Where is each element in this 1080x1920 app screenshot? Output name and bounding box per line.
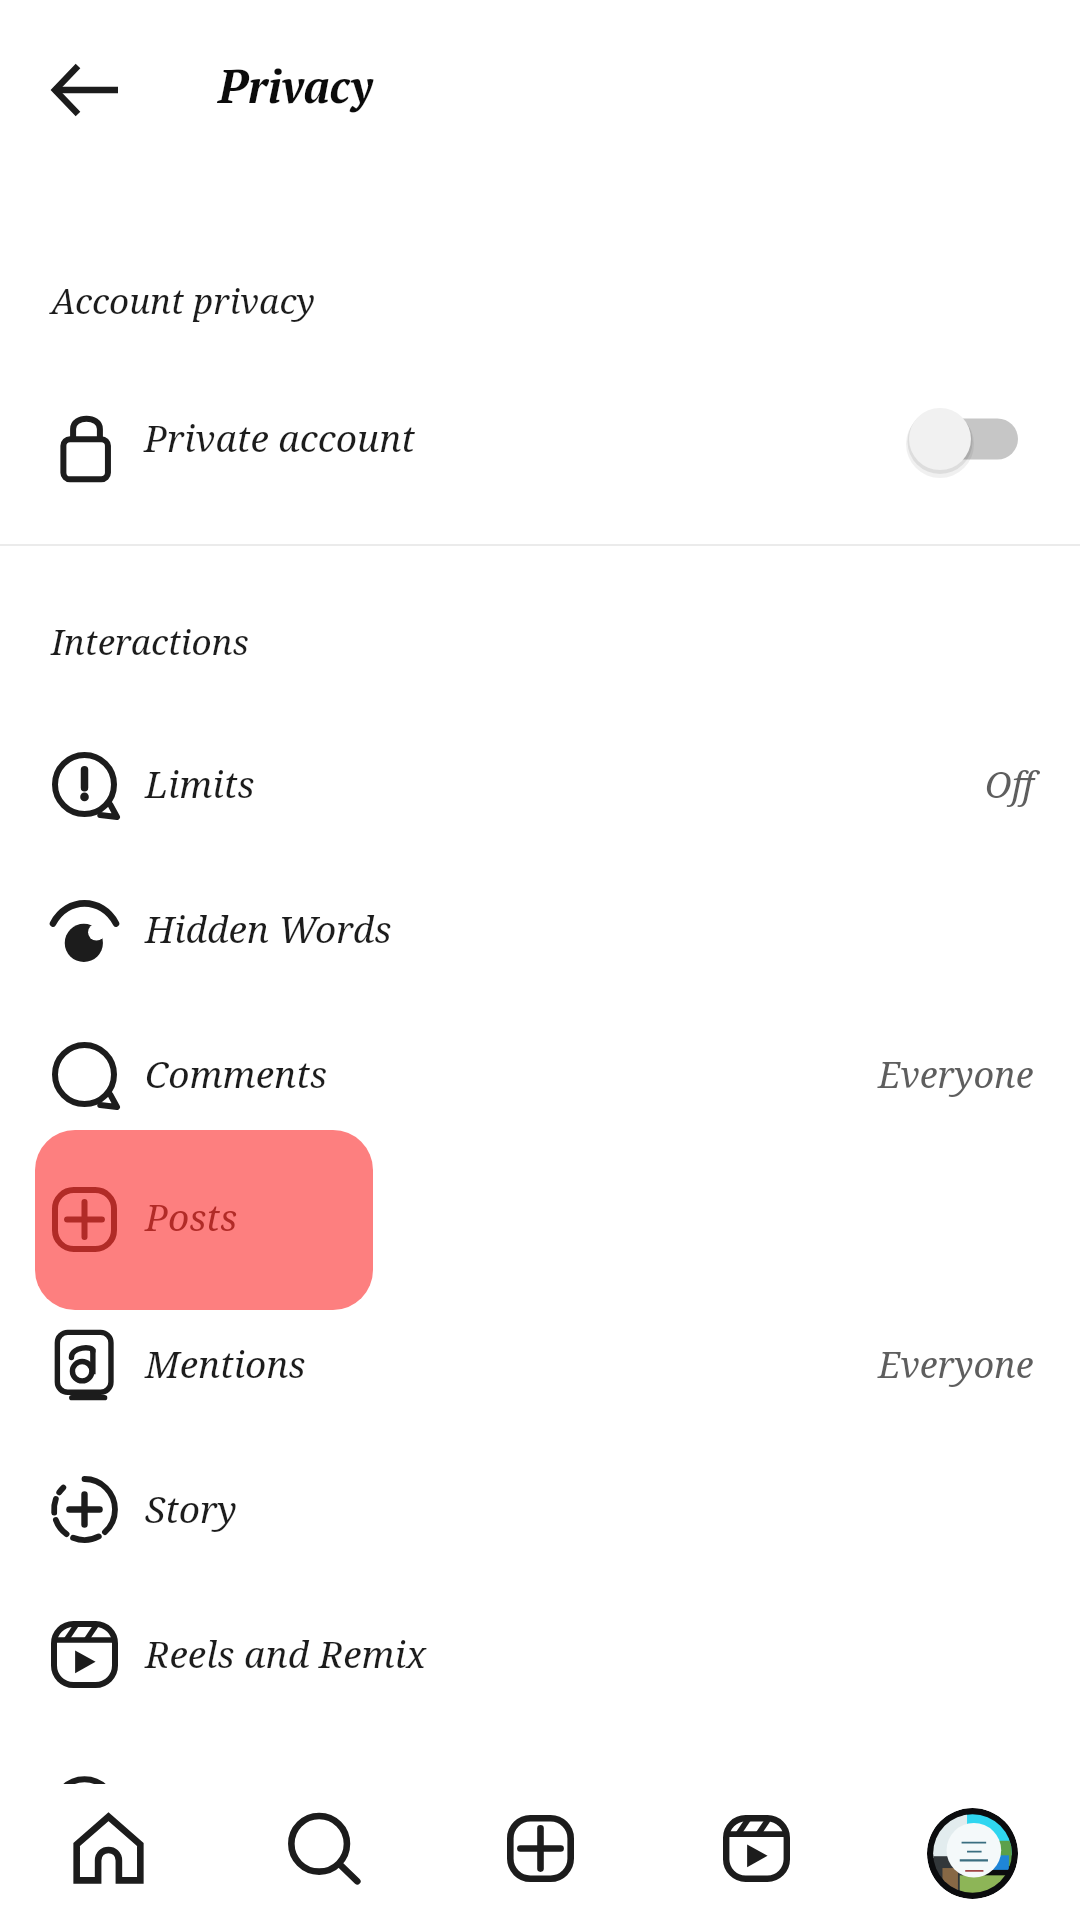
button[interactable]: Posts bbox=[0, 1148, 1080, 1292]
button[interactable]: Story bbox=[0, 1438, 1080, 1582]
button[interactable]: Hidden Words bbox=[0, 858, 1080, 1002]
staticText: Everyone bbox=[878, 1050, 1034, 1099]
staticText: Account privacy bbox=[51, 277, 315, 325]
button[interactable]: Create bbox=[492, 1806, 588, 1902]
staticText: Private account bbox=[144, 412, 415, 462]
button[interactable]: Reels bbox=[708, 1806, 804, 1902]
staticText: Everyone bbox=[878, 1340, 1034, 1389]
staticText: Posts bbox=[145, 1193, 238, 1243]
staticText: Off bbox=[985, 760, 1034, 809]
staticText: Privacy bbox=[218, 55, 373, 116]
staticText: Mentions bbox=[145, 1338, 306, 1388]
button[interactable]: Profile bbox=[927, 1808, 1018, 1899]
button[interactable]: Back bbox=[52, 64, 118, 116]
staticText: Hidden Words bbox=[145, 903, 392, 953]
staticText: Comments bbox=[145, 1048, 327, 1098]
staticText: Interactions bbox=[51, 618, 249, 666]
button[interactable]: Limits bbox=[0, 713, 1080, 857]
button[interactable]: Comments bbox=[0, 1003, 1080, 1147]
staticText: Reels and Remix bbox=[145, 1628, 427, 1678]
button[interactable]: Private account bbox=[0, 398, 1080, 498]
button[interactable]: Mentions bbox=[0, 1293, 1080, 1437]
button[interactable]: Search bbox=[276, 1806, 372, 1902]
button[interactable]: Restricted bbox=[0, 1738, 1080, 1882]
button[interactable]: Posts bbox=[35, 1130, 373, 1310]
staticText: Posts bbox=[145, 1191, 238, 1241]
staticText: Restricted bbox=[145, 1783, 319, 1833]
staticText: Limits bbox=[145, 758, 255, 808]
button[interactable]: Reels and Remix bbox=[0, 1583, 1080, 1727]
button[interactable]: Home bbox=[60, 1806, 156, 1902]
staticText: Story bbox=[145, 1483, 237, 1533]
button[interactable]: Private account toggle bbox=[900, 409, 1024, 473]
